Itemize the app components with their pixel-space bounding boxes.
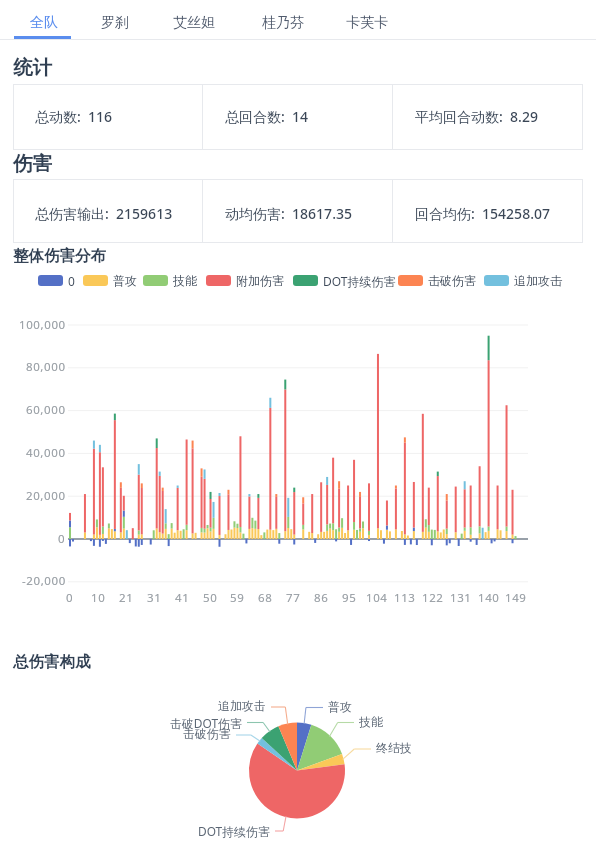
staticText: 80,000 — [26, 359, 66, 375]
staticText: 全队 — [30, 14, 58, 32]
button[interactable]: 罗刹 — [89, 0, 141, 39]
button[interactable]: 总回合数: 14 — [203, 84, 393, 150]
staticText: DOT持续伤害 — [323, 273, 396, 289]
staticText: 普攻 — [113, 273, 137, 288]
button[interactable]: 全队 — [18, 0, 70, 39]
staticText: 149 — [505, 590, 527, 606]
button[interactable]: 总动数: 116 — [13, 84, 203, 150]
staticText: 68 — [258, 590, 273, 606]
staticText: 31 — [147, 590, 162, 606]
staticText: 100,000 — [19, 317, 66, 333]
staticText: 21 — [119, 590, 134, 606]
staticText: 统计 — [13, 55, 52, 80]
staticText: 击破伤害 — [183, 727, 231, 742]
staticText: 0 — [58, 531, 66, 547]
staticText: -20,000 — [22, 573, 66, 589]
button[interactable]: 平均回合动数: 8.29 — [393, 84, 583, 150]
button[interactable]: 附加伤害 — [206, 271, 284, 290]
button[interactable]: 0 — [38, 271, 75, 290]
staticText: 艾丝妲 — [173, 14, 215, 32]
staticText: DOT持续伤害 — [198, 823, 270, 839]
staticText: 击破DOT伤害 — [170, 715, 242, 731]
button[interactable]: 普攻 — [83, 271, 137, 290]
staticText: 总伤害构成 — [13, 652, 91, 672]
staticText: 技能 — [173, 273, 197, 288]
button[interactable]: 击破伤害 — [398, 271, 476, 290]
staticText: 122 — [422, 590, 444, 606]
staticText: 追加攻击 — [218, 699, 266, 714]
staticText: 罗刹 — [101, 14, 129, 32]
staticText: 50 — [203, 590, 218, 606]
staticText: 60,000 — [26, 402, 66, 418]
staticText: 伤害 — [13, 151, 52, 176]
staticText: 总回合数: 14 — [225, 107, 309, 126]
button[interactable]: 追加攻击 — [484, 271, 562, 290]
staticText: 卡芙卡 — [346, 14, 388, 32]
staticText: 总伤害输出: 2159613 — [35, 204, 173, 223]
button[interactable]: 卡芙卡 — [334, 0, 400, 39]
button[interactable]: 总伤害输出: 2159613 — [13, 179, 203, 243]
staticText: 77 — [286, 590, 301, 606]
button[interactable]: DOT持续伤害 — [293, 271, 396, 290]
staticText: 95 — [342, 590, 357, 606]
staticText: 追加攻击 — [514, 273, 562, 288]
staticText: 击破伤害 — [428, 273, 476, 288]
staticText: 20,000 — [26, 488, 66, 504]
button[interactable]: 艾丝妲 — [161, 0, 227, 39]
staticText: 40,000 — [26, 445, 66, 461]
staticText: 平均回合动数: 8.29 — [415, 107, 538, 126]
staticText: 131 — [450, 590, 472, 606]
staticText: 附加伤害 — [236, 273, 284, 288]
staticText: 终结技 — [376, 741, 412, 756]
staticText: 104 — [366, 590, 388, 606]
button[interactable]: 动均伤害: 18617.35 — [203, 179, 393, 243]
button[interactable]: 桂乃芬 — [250, 0, 316, 39]
staticText: 113 — [394, 590, 416, 606]
staticText: 0 — [66, 590, 74, 606]
staticText: 0 — [68, 273, 75, 289]
staticText: 普攻 — [328, 700, 352, 715]
staticText: 41 — [175, 590, 190, 606]
staticText: 140 — [478, 590, 500, 606]
staticText: 86 — [314, 590, 329, 606]
staticText: 总动数: 116 — [35, 107, 113, 126]
staticText: 动均伤害: 18617.35 — [225, 204, 352, 223]
button[interactable]: 回合均伤: 154258.07 — [393, 179, 583, 243]
staticText: 59 — [230, 590, 245, 606]
staticText: 回合均伤: 154258.07 — [415, 204, 550, 223]
button[interactable]: 技能 — [143, 271, 197, 290]
staticText: 整体伤害分布 — [13, 246, 106, 266]
staticText: 技能 — [359, 715, 383, 730]
staticText: 桂乃芬 — [262, 14, 304, 32]
staticText: 10 — [91, 590, 106, 606]
